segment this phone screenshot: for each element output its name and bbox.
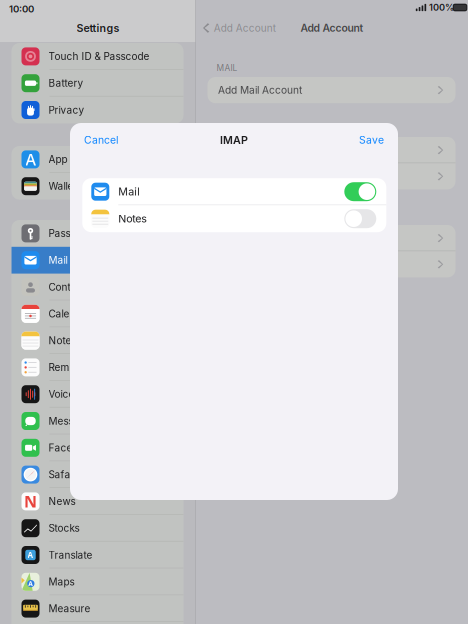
staticText: FaceTime [48, 442, 94, 454]
button[interactable]: Add Mail Account [207, 77, 455, 103]
staticText: 10:00 [9, 3, 34, 15]
button[interactable]: FaceTime [11, 434, 183, 461]
staticText: Safari [48, 469, 76, 481]
staticText: A [25, 149, 35, 170]
staticText: Notes [118, 212, 147, 225]
staticText: News [48, 495, 75, 507]
staticText: Voice Memos [48, 388, 112, 400]
staticText: A [27, 550, 33, 560]
staticText: Notes [48, 335, 76, 347]
button[interactable]: Wallet [11, 173, 183, 200]
button[interactable]: Touch ID & Passcode [11, 43, 183, 70]
button[interactable]: Privacy [11, 97, 183, 123]
button[interactable]: Stocks [11, 515, 183, 542]
staticText: Touch ID & Passcode [48, 50, 149, 62]
button[interactable]: Messages [11, 408, 183, 434]
button[interactable]: Save [353, 123, 398, 157]
button[interactable]: N [11, 488, 183, 515]
button[interactable]: Cancel [70, 123, 125, 157]
staticText: Battery [48, 77, 83, 89]
button[interactable]: Notes [82, 205, 386, 232]
button[interactable]: Measure [11, 595, 183, 622]
staticText: A [28, 579, 33, 588]
staticText: Calendar [48, 308, 91, 320]
button[interactable]: Passwords [11, 220, 183, 247]
staticText: Mail [48, 254, 67, 266]
button[interactable]: Reminders [11, 354, 183, 381]
staticText: Stocks [48, 522, 79, 534]
staticText: Save [359, 134, 384, 146]
button[interactable]: Calendar [11, 300, 183, 327]
button[interactable]: Voice Memos [11, 381, 183, 408]
staticText: Maps [48, 576, 74, 588]
staticText: 100% [429, 2, 454, 13]
button[interactable]: Contacts [11, 274, 183, 300]
staticText: MAIL [216, 63, 237, 73]
button[interactable]: Mail [11, 247, 183, 274]
staticText: Reminders [48, 361, 98, 373]
button[interactable]: Mail [82, 178, 386, 205]
staticText: Passwords [48, 227, 99, 239]
staticText: Wallet [48, 180, 76, 192]
staticText: Add Account [300, 22, 363, 34]
staticText: Add Account [214, 22, 276, 34]
button[interactable] [207, 163, 455, 189]
staticText: Contacts [48, 281, 90, 293]
button[interactable] [207, 137, 455, 163]
button[interactable] [207, 225, 455, 251]
button[interactable] [207, 251, 455, 277]
staticText: Privacy [48, 104, 84, 116]
staticText: Add Mail Account [218, 84, 302, 96]
button[interactable]: A [11, 568, 183, 595]
staticText: Settings [76, 21, 119, 34]
staticText: Translate [48, 549, 92, 561]
staticText: N [24, 491, 37, 512]
button[interactable]: A [11, 146, 183, 173]
button[interactable]: A [11, 542, 183, 568]
button[interactable]: Add Account [203, 16, 299, 40]
staticText: IMAP [220, 133, 248, 146]
button[interactable]: Battery [11, 70, 183, 97]
staticText: Cancel [84, 134, 119, 146]
staticText: App Store [48, 153, 95, 165]
button[interactable]: Notes [11, 327, 183, 354]
staticText: Messages [48, 415, 96, 427]
staticText: Mail [118, 185, 140, 198]
staticText: Measure [48, 603, 90, 615]
button[interactable]: Safari [11, 461, 183, 488]
